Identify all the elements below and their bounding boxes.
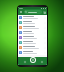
button[interactable] <box>18 50 47 55</box>
button[interactable] <box>18 35 47 40</box>
button[interactable] <box>18 15 47 20</box>
button[interactable] <box>18 25 47 30</box>
button[interactable] <box>18 40 47 45</box>
button[interactable]: Profile <box>39 59 44 64</box>
button[interactable]: Home <box>22 59 27 64</box>
button[interactable] <box>24 10 42 14</box>
button[interactable]: Menu <box>19 10 23 14</box>
button[interactable] <box>18 45 47 50</box>
button[interactable] <box>18 20 47 25</box>
button[interactable]: More options <box>43 11 46 14</box>
button[interactable]: Add <box>30 57 36 63</box>
button[interactable] <box>18 30 47 35</box>
